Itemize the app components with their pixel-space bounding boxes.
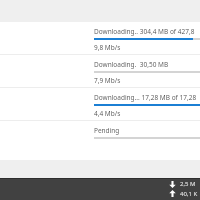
staticText: 7,9 Mb/s <box>94 76 121 85</box>
staticText: 2,5 M <box>180 180 196 188</box>
button[interactable]: Downloading.. 304,4 MB of 427,8 MB <box>0 22 200 54</box>
staticText: 9,8 Mb/s <box>94 43 121 52</box>
staticText: 40,1 K <box>180 190 198 198</box>
staticText: Downloading.. 304,4 MB of 427,8 MB <box>94 27 200 36</box>
button[interactable]: Network transfer rates <box>169 180 198 198</box>
staticText: Downloading. 30,50 MB <box>94 60 169 69</box>
staticText: Downloading... 17,28 MB of 17,28 MB <box>94 93 200 102</box>
button[interactable]: Downloading... 17,28 MB of 17,28 MB <box>0 88 200 120</box>
staticText: 4,4 Mb/s <box>94 109 121 118</box>
button[interactable]: Pending <box>0 121 200 153</box>
staticText: Pending <box>94 126 120 135</box>
button[interactable]: Downloading. 30,50 MB <box>0 55 200 87</box>
